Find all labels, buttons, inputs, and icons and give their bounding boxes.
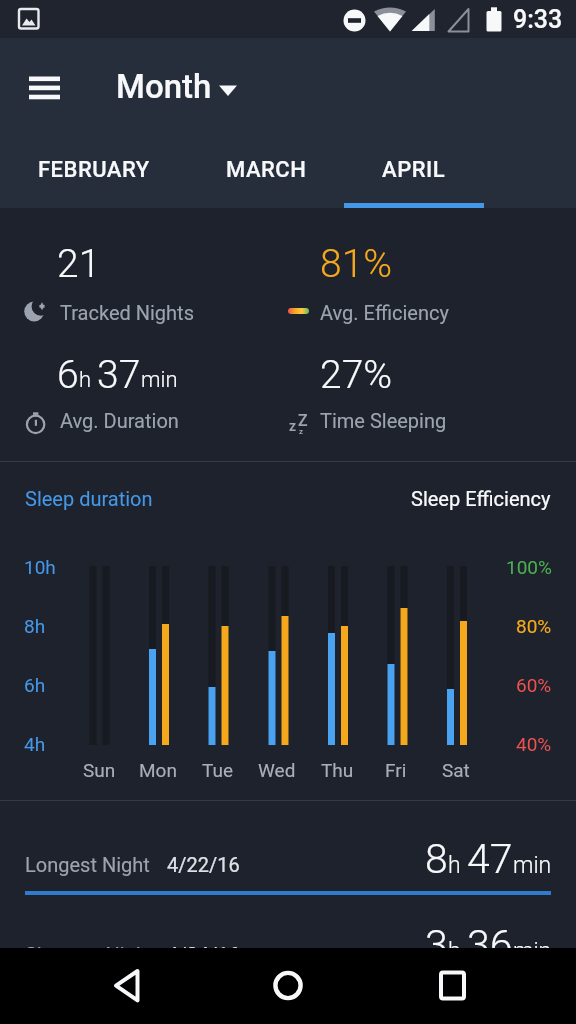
staticText: 37 [97, 352, 141, 398]
staticText: 81% [320, 241, 393, 287]
button[interactable] [420, 954, 484, 1018]
staticText: 8 [425, 835, 448, 883]
staticText: z [289, 418, 297, 434]
staticText: 40% [516, 733, 552, 755]
button[interactable]: Month [116, 38, 316, 135]
staticText: 8h [24, 615, 46, 637]
staticText: 80% [516, 615, 552, 637]
button[interactable]: APRIL [334, 140, 494, 200]
staticText: Avg. Efficiency [320, 301, 449, 324]
staticText: min [513, 938, 552, 965]
staticText: Time Sleeping [320, 409, 447, 432]
staticText: h [448, 938, 467, 965]
button[interactable]: Sleep duration [25, 483, 245, 513]
staticText: Sleep duration [25, 487, 153, 510]
staticText: 10h [24, 556, 56, 578]
staticText: Tracked Nights [60, 301, 194, 324]
staticText: 9:33 [513, 5, 563, 34]
staticText: 3 [425, 921, 448, 969]
staticText: Avg. Duration [60, 409, 179, 432]
staticText: Sun [83, 759, 116, 781]
staticText: 47 [467, 835, 513, 883]
staticText: Wed [258, 759, 296, 781]
button[interactable] [96, 954, 160, 1018]
staticText: FEBRUARY [38, 157, 150, 183]
staticText: 100% [506, 556, 552, 578]
staticText: 27% [320, 352, 393, 398]
staticText: 36 [467, 921, 513, 969]
staticText: Month [116, 67, 212, 106]
staticText: 21 [57, 241, 101, 287]
staticText: Fri [385, 759, 407, 781]
staticText: APRIL [382, 157, 446, 183]
staticText: Thu [321, 759, 354, 781]
staticText: Sleep Efficiency [411, 487, 551, 510]
button[interactable]: MARCH [186, 140, 346, 200]
button[interactable] [12, 60, 76, 116]
staticText: min [513, 852, 552, 879]
staticText: 4h [24, 733, 46, 755]
staticText: MARCH [226, 157, 307, 183]
staticText: Tue [202, 759, 234, 781]
button[interactable]: FEBRUARY [14, 140, 174, 200]
button[interactable]: Sleep Efficiency [331, 483, 551, 513]
staticText: 60% [516, 674, 552, 696]
staticText: 4/22/16 [167, 853, 240, 876]
staticText: Sat [442, 759, 470, 781]
staticText: z [299, 427, 304, 436]
staticText: Mon [139, 759, 177, 781]
button[interactable] [0, 801, 576, 901]
staticText: Longest Night [25, 853, 150, 876]
staticText: Shortest Night [25, 943, 154, 966]
button[interactable] [256, 954, 320, 1018]
staticText: 6 [57, 352, 79, 398]
staticText: Z [298, 411, 308, 430]
staticText: 4/24/16 [167, 943, 240, 966]
staticText: h [448, 852, 467, 879]
staticText: h [79, 367, 97, 393]
staticText: 6h [24, 674, 46, 696]
staticText: min [141, 367, 178, 393]
